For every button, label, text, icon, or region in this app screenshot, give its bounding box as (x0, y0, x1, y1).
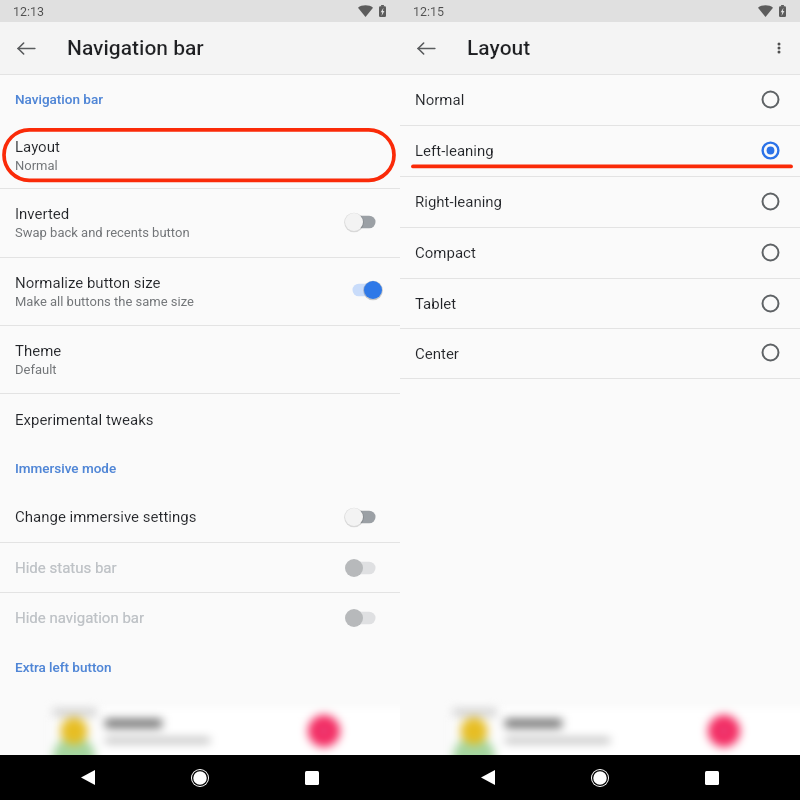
button[interactable]: Hide status bar (0, 543, 400, 592)
staticText: Navigation bar (15, 91, 103, 107)
staticText: Normal (415, 91, 465, 109)
button[interactable]: Left-leaning (400, 126, 800, 176)
staticText: Extra left button (15, 659, 112, 675)
button[interactable]: Right-leaning (400, 177, 800, 227)
staticText: Hide navigation bar (15, 609, 145, 627)
staticText: Make all buttons the same size (15, 294, 194, 309)
staticText: 12:13 (13, 4, 45, 19)
staticText: Theme (15, 342, 62, 360)
button[interactable]: Tablet (400, 279, 800, 329)
staticText: Experimental tweaks (15, 411, 154, 429)
staticText: Hide status bar (15, 559, 117, 577)
button[interactable]: Home (544, 755, 656, 800)
staticText: Default (15, 362, 57, 377)
staticText: Right-leaning (415, 193, 503, 211)
button[interactable]: Navigate up (408, 30, 444, 66)
staticText: Swap back and recents button (15, 225, 190, 240)
button[interactable]: Change immersive settings (0, 492, 400, 542)
staticText: Change immersive settings (15, 508, 197, 526)
button[interactable]: Recents (256, 755, 368, 800)
staticText: Inverted (15, 205, 70, 223)
button[interactable]: Home (144, 755, 256, 800)
button[interactable]: Navigate up (8, 30, 44, 66)
staticText: Normal (15, 158, 58, 173)
button[interactable]: Experimental tweaks (0, 394, 400, 444)
staticText: Tablet (415, 295, 457, 313)
button[interactable]: Normalize button size (0, 258, 400, 325)
button[interactable]: Normal (400, 75, 800, 125)
button[interactable]: Inverted (0, 189, 400, 257)
button[interactable]: Compact (400, 228, 800, 278)
button[interactable]: Center (400, 329, 800, 378)
staticText: Normalize button size (15, 274, 161, 292)
staticText: Layout (467, 36, 531, 61)
button[interactable]: Layout (0, 127, 400, 188)
button[interactable]: Recents (656, 755, 768, 800)
button[interactable]: Hide navigation bar (0, 593, 400, 643)
staticText: Layout (15, 138, 60, 156)
button[interactable]: More options (761, 30, 797, 66)
button[interactable]: Theme (0, 326, 400, 393)
staticText: Immersive mode (15, 460, 117, 476)
staticText: Left-leaning (415, 142, 494, 160)
staticText: 12:15 (413, 4, 445, 19)
staticText: Center (415, 345, 459, 363)
button[interactable]: Back (432, 755, 544, 800)
staticText: Compact (415, 244, 476, 262)
staticText: Navigation bar (67, 36, 204, 61)
button[interactable]: Back (32, 755, 144, 800)
